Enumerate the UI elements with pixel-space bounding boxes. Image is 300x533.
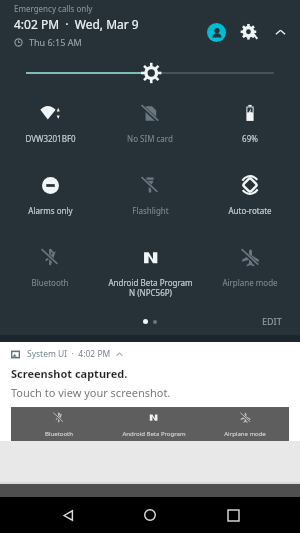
button[interactable]: Home [135,500,165,530]
staticText: Airplane mode [224,430,266,438]
button[interactable]: Recents [218,500,248,530]
staticText: Auto-rotate [228,205,272,216]
staticText: Flashlight [132,205,169,216]
button[interactable]: Flashlight [100,174,200,216]
staticText: Screenshot captured. [11,366,128,381]
button[interactable]: 69% [200,102,300,144]
button[interactable]: Auto-rotate [200,174,300,216]
staticText: DVW3201BF0 [25,133,76,144]
button[interactable]: Bluetooth [0,246,100,288]
button[interactable]: Android Beta Program N (NPC56P) [100,246,200,298]
button[interactable]: DVW3201BF0 [0,102,100,144]
staticText: System UI · 4:02 PM [27,348,111,360]
staticText: Emergency calls only [14,3,93,14]
staticText: Bluetooth [45,430,73,438]
staticText: 4:02 PM · Wed, Mar 9 [14,16,139,32]
staticText: Bluetooth [31,277,69,288]
button[interactable]: Airplane mode [200,246,300,288]
button[interactable]: Bluetooth [11,407,289,441]
staticText: Touch to view your screenshot. [11,385,171,400]
button[interactable]: System UI · 4:02 PM [0,342,300,441]
staticText: No SIM card [127,133,173,144]
button[interactable]: EDIT [258,311,286,331]
staticText: Airplane mode [222,277,278,288]
button[interactable] [26,60,274,86]
staticText: Alarms only [28,205,73,216]
button[interactable]: Settings [239,22,259,42]
staticText: Android Beta Program N (NPC56P) [108,277,193,298]
staticText: EDIT [262,315,282,327]
button[interactable]: Alarms only [0,174,100,216]
staticText: Android Beta Program [122,430,186,438]
staticText: Thu 6:15 AM [29,36,82,48]
button[interactable]: No SIM card [100,102,200,144]
button[interactable]: User [207,23,226,42]
button[interactable]: Back [53,500,83,530]
staticText: 69% [242,133,258,144]
button[interactable]: Collapse [271,23,289,41]
